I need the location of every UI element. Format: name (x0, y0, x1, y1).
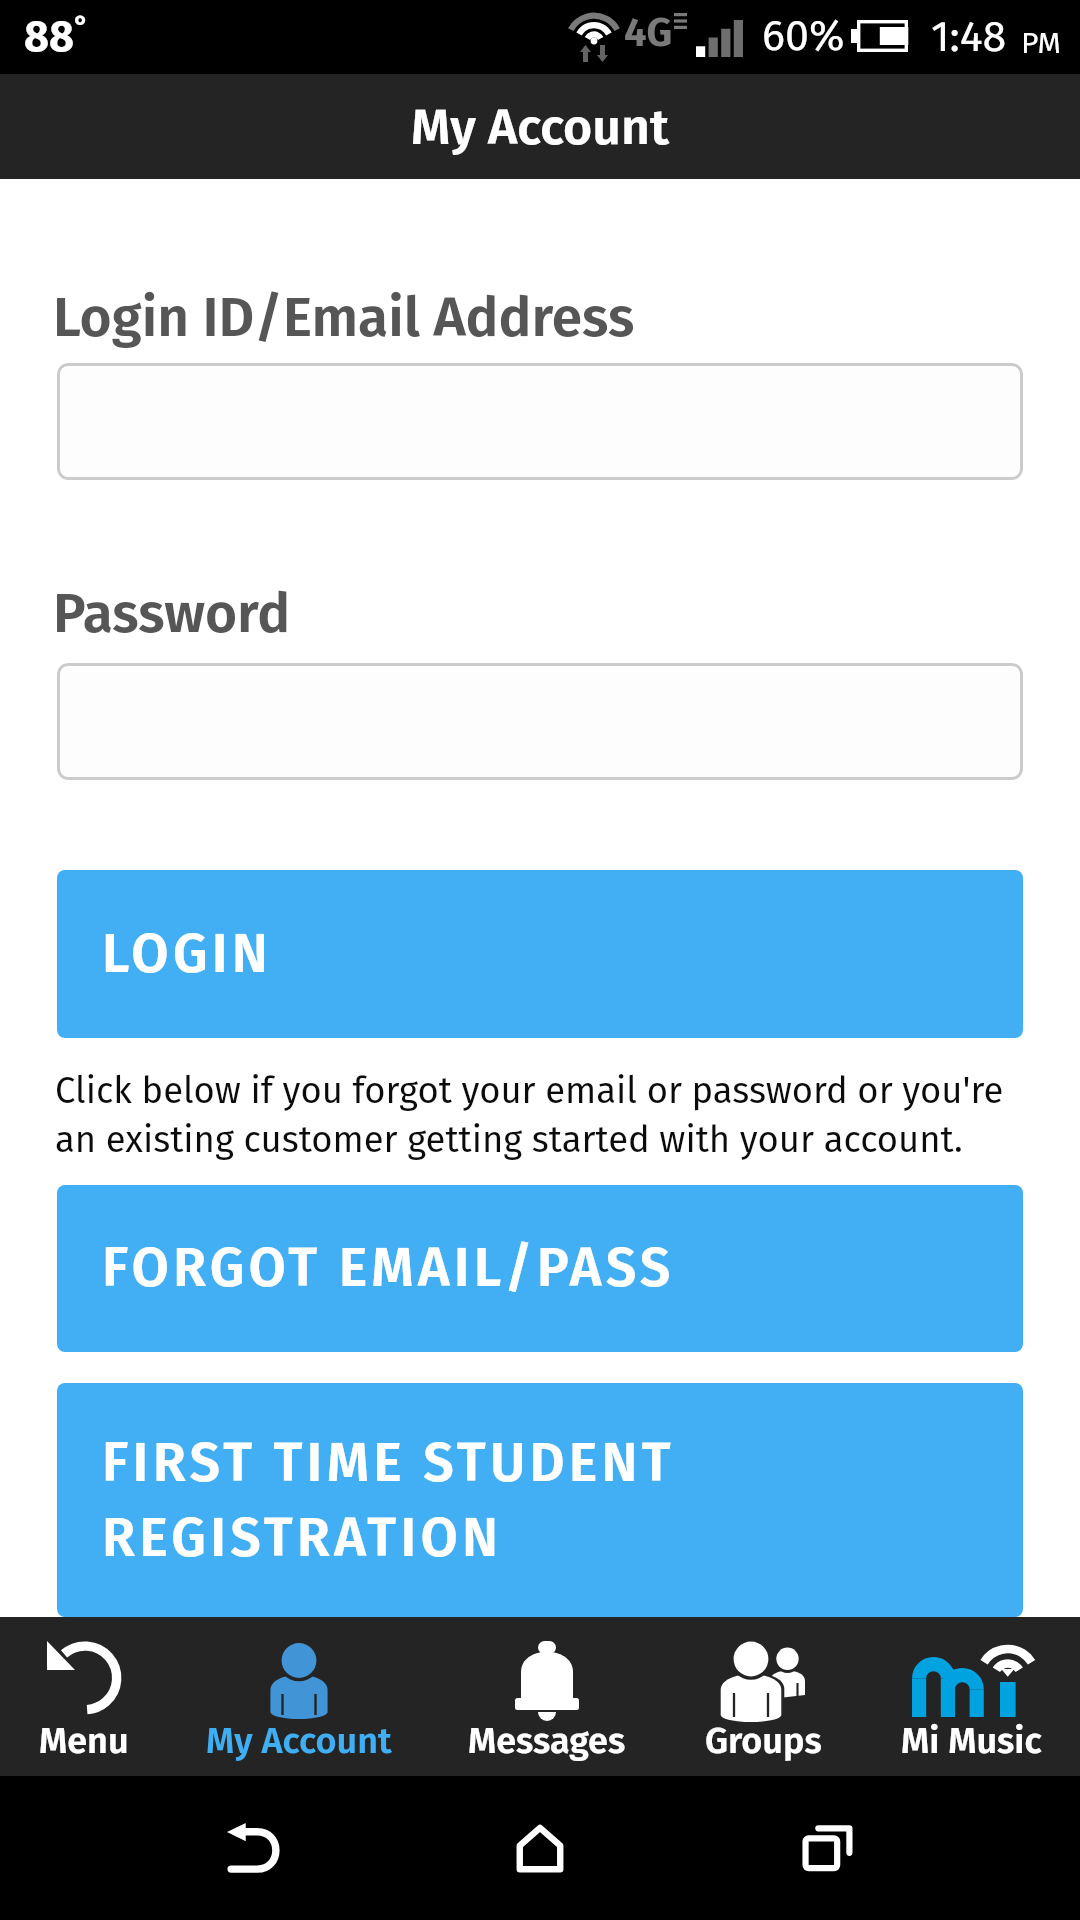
staticText: FORGOT EMAIL/PASS (102, 1236, 675, 1301)
staticText: Messages (468, 1719, 626, 1762)
button[interactable]: Back (198, 1793, 308, 1903)
button[interactable]: My Account (168, 1617, 430, 1776)
staticText: FIRST TIME STUDENT REGISTRATION (102, 1431, 675, 1570)
staticText: Groups (705, 1719, 822, 1762)
staticText: Mi Music (901, 1719, 1042, 1762)
staticText: Password (53, 581, 291, 647)
staticText: 1:48 (931, 11, 1007, 63)
button[interactable]: FIRST TIME STUDENT REGISTRATION (57, 1383, 1023, 1617)
button[interactable]: Menu (0, 1617, 168, 1776)
button[interactable]: FORGOT EMAIL/PASS (57, 1185, 1023, 1352)
staticText: My Account (206, 1719, 392, 1762)
staticText: 4G (624, 9, 673, 57)
button[interactable]: LOGIN (57, 870, 1023, 1038)
button[interactable]: Messages (430, 1617, 664, 1776)
button[interactable]: Home (485, 1793, 595, 1903)
staticText: Click below if you forgot your email or … (55, 1069, 1020, 1162)
staticText: 88 (24, 11, 74, 63)
button[interactable]: Groups (664, 1617, 862, 1776)
staticText: PM (1021, 25, 1061, 61)
staticText: My Account (411, 97, 669, 157)
staticText: ° (74, 9, 89, 43)
staticText: 60% (762, 10, 845, 62)
staticText: LOGIN (102, 922, 273, 987)
staticText: Menu (39, 1719, 129, 1762)
button[interactable] (57, 663, 1023, 780)
button[interactable]: Mi Music (862, 1617, 1080, 1776)
button[interactable]: Recent apps (773, 1793, 883, 1903)
button[interactable] (57, 363, 1023, 480)
staticText: Login ID/Email Address (53, 285, 635, 351)
